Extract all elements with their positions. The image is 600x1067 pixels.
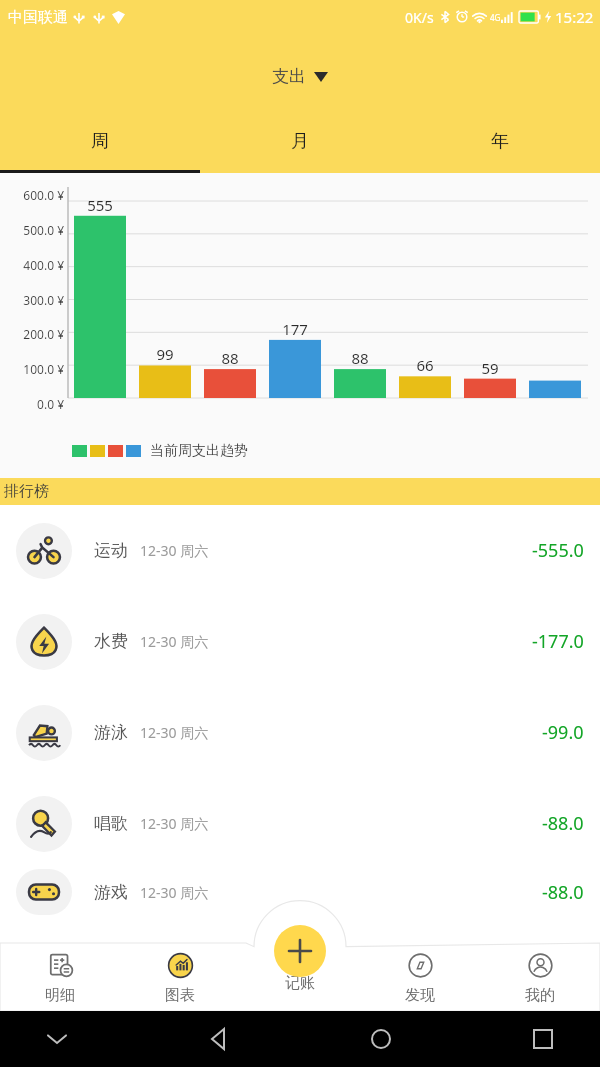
staticText: 600.0 ¥ [4,187,64,203]
staticText: 我的 [525,986,555,1005]
staticText: 发现 [405,986,435,1005]
staticText: 100.0 ¥ [4,361,64,377]
button[interactable]: 图表 [120,945,240,1011]
button[interactable]: 明细 [0,945,120,1011]
staticText: 300.0 ¥ [4,292,64,308]
staticText: 4G [490,12,501,23]
staticText: -177.0 [532,629,584,654]
button[interactable]: 年 [400,122,600,173]
staticText: 88 [214,348,246,368]
button[interactable]: 月 [200,122,400,173]
staticText: 中国联通 [8,8,68,27]
staticText: 12-30 周六 [140,883,209,902]
staticText: 周 [91,130,109,153]
staticText: 0.0 ¥ [4,396,64,412]
staticText: 游戏 [94,882,128,903]
staticText: -88.0 [542,811,584,836]
staticText: 当前周支出趋势 [150,442,248,460]
staticText: -555.0 [532,538,584,563]
staticText: 500.0 ¥ [4,222,64,238]
staticText: 555 [84,195,116,215]
staticText: 支出 [272,66,306,87]
button[interactable]: 记账 [274,925,326,977]
staticText: 排行榜 [4,482,49,501]
staticText: 200.0 ¥ [4,326,64,342]
staticText: 12-30 周六 [140,541,209,560]
button[interactable]: Hide keyboard [40,1022,74,1056]
staticText: 记账 [285,974,315,993]
button[interactable]: Recents [526,1022,560,1056]
button[interactable]: 唱歌 [0,778,600,869]
button[interactable]: 支出 [262,62,338,91]
staticText: 177 [279,319,311,339]
staticText: 游泳 [94,722,128,743]
button[interactable]: Back [202,1022,236,1056]
button[interactable]: 周 [0,122,200,173]
staticText: 12-30 周六 [140,814,209,833]
button[interactable]: 运动 [0,505,600,596]
staticText: 运动 [94,540,128,561]
staticText: 12-30 周六 [140,632,209,651]
staticText: -88.0 [542,880,584,905]
staticText: 59 [474,358,506,378]
staticText: 400.0 ¥ [4,257,64,273]
staticText: 99 [149,344,181,364]
staticText: 12-30 周六 [140,723,209,742]
staticText: 唱歌 [94,813,128,834]
button[interactable]: Home [364,1022,398,1056]
button[interactable]: 发现 [360,945,480,1011]
staticText: 月 [291,130,309,153]
staticText: 88 [344,348,376,368]
staticText: 年 [491,130,509,153]
button[interactable]: 游戏 [0,869,600,915]
staticText: 0K/s [405,8,434,27]
staticText: -99.0 [542,720,584,745]
staticText: 66 [409,355,441,375]
button[interactable]: 我的 [480,945,600,1011]
button[interactable]: 记账 [240,945,360,1011]
staticText: 图表 [165,986,195,1005]
staticText: 15:22 [555,7,594,27]
staticText: 水费 [94,631,128,652]
button[interactable]: 水费 [0,596,600,687]
button[interactable]: 游泳 [0,687,600,778]
staticText: 明细 [45,986,75,1005]
